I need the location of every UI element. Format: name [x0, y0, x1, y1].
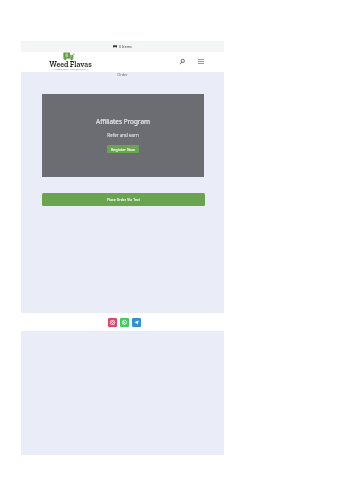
- button[interactable]: WhatsApp: [120, 318, 129, 327]
- staticText: — best in flavor · freshest online —: [45, 68, 96, 71]
- button[interactable]: 0 Items: [111, 42, 134, 51]
- staticText: Order: [21, 72, 224, 77]
- staticText: Refer and earn: [42, 132, 204, 138]
- staticText: 0 Items: [119, 44, 132, 49]
- button[interactable]: Menu: [195, 56, 206, 67]
- button[interactable]: Search: [177, 56, 188, 67]
- button[interactable]: Telegram: [132, 318, 141, 327]
- button[interactable]: Place Order Via Text: [42, 193, 205, 206]
- staticText: Weed Flavas: [46, 60, 95, 69]
- staticText: Affiliates Program: [42, 117, 204, 126]
- button[interactable]: Register Now: [107, 145, 139, 153]
- staticText: Register Now: [111, 147, 135, 152]
- button[interactable]: Instagram: [108, 318, 117, 327]
- staticText: Place Order Via Text: [107, 198, 141, 202]
